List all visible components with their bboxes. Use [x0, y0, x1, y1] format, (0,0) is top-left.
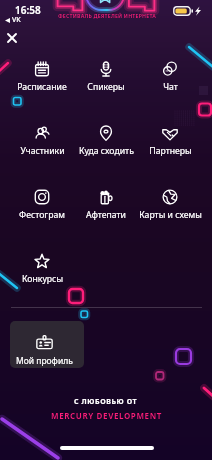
staticText: ФЕСТИВАЛЬ ДЕЯТЕЛЕЙ ИНТЕРНЕТА [55, 12, 159, 19]
staticText: VK [12, 15, 21, 25]
staticText: Куда сходить [79, 145, 134, 157]
staticText: С ЛЮБОВЬЮ ОТ [74, 397, 138, 407]
staticText: Чат [163, 81, 178, 93]
staticText: Фестограм [19, 209, 65, 221]
button[interactable]: Конкурсы [10, 248, 74, 312]
staticText: 16:58 [15, 3, 41, 17]
button[interactable]: Партнеры [138, 120, 202, 184]
button[interactable]: Чат [138, 56, 202, 120]
staticText: Афтепати [86, 209, 126, 221]
button[interactable]: Расписание [10, 56, 74, 120]
button[interactable]: Спикеры [74, 56, 138, 120]
staticText: Партнеры [149, 145, 192, 157]
staticText: Расписание [17, 81, 67, 93]
button[interactable]: Close [0, 26, 23, 49]
button[interactable]: Куда сходить [74, 120, 138, 184]
button[interactable]: Фестограм [10, 184, 74, 248]
button[interactable]: Мой профиль [10, 321, 84, 368]
staticText: Карты и схемы [139, 209, 202, 221]
staticText: Конкурсы [22, 273, 63, 285]
staticText: Мой профиль [16, 355, 73, 367]
staticText: Участники [20, 145, 65, 157]
button[interactable]: Карты и схемы [138, 184, 202, 248]
staticText: MERCURY DEVELOPMENT [51, 410, 162, 421]
staticText: Спикеры [87, 81, 125, 93]
button[interactable]: Афтепати [74, 184, 138, 248]
button[interactable]: Участники [10, 120, 74, 184]
